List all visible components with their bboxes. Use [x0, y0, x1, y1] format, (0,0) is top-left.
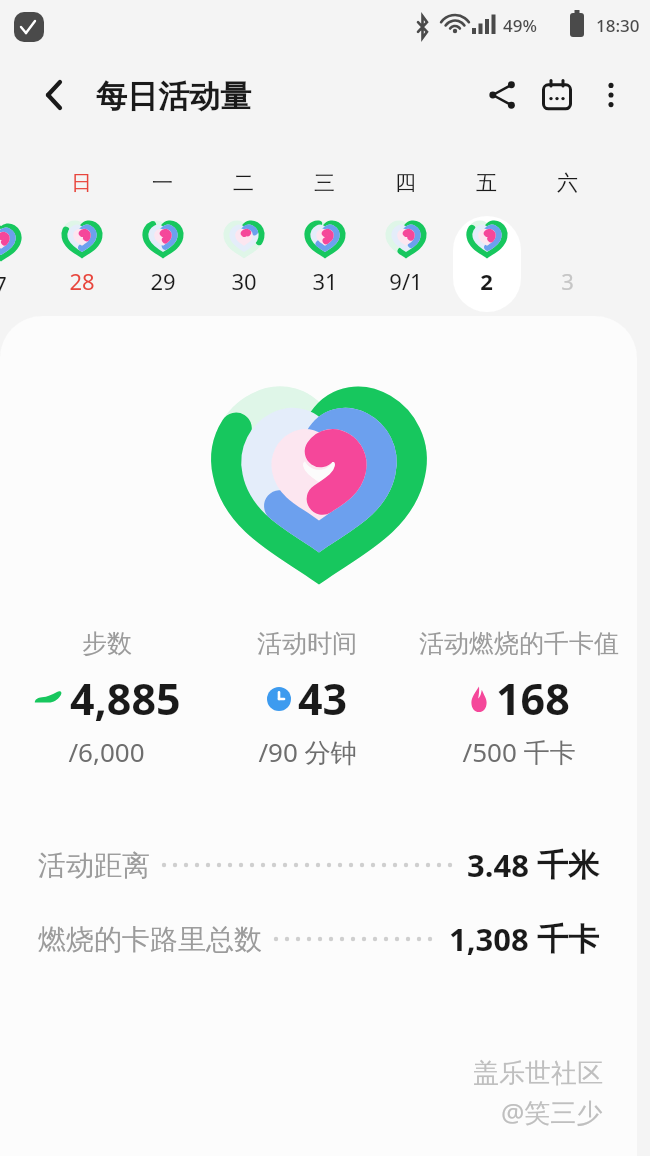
staticText: @笑三少	[501, 1094, 603, 1130]
staticText: 千米	[537, 846, 599, 885]
staticText: 4,885	[70, 669, 181, 728]
button[interactable]: 活动距离	[0, 828, 637, 902]
button[interactable]: 燃烧的卡路里总数	[0, 902, 637, 976]
staticText: 28	[69, 266, 95, 296]
button[interactable]: Calendar	[530, 68, 584, 122]
staticText: 31	[312, 266, 338, 296]
staticText: 29	[150, 266, 176, 296]
button[interactable]: 四	[365, 158, 446, 316]
button[interactable]: More options	[584, 68, 638, 122]
staticText: 二	[233, 170, 254, 196]
staticText: 六	[557, 170, 578, 196]
button[interactable]: 活动燃烧的千卡值	[407, 628, 631, 770]
staticText: 活动燃烧的千卡值	[419, 628, 619, 659]
staticText: 活动距离	[38, 848, 150, 883]
button[interactable]: Back	[34, 75, 74, 115]
staticText: 168	[496, 669, 570, 728]
button[interactable]: Share	[476, 68, 530, 122]
button[interactable]: 日	[41, 158, 122, 316]
button[interactable]: 活动时间	[207, 628, 407, 770]
staticText: 3	[561, 266, 574, 296]
staticText: /6,000	[68, 734, 145, 769]
staticText: /500 千卡	[462, 734, 576, 770]
staticText: /90 分钟	[258, 734, 357, 770]
button[interactable]: 五	[446, 158, 527, 316]
staticText: 2	[480, 266, 493, 296]
staticText: 3.48	[467, 844, 529, 886]
staticText: 步数	[82, 628, 132, 659]
button[interactable]: 7	[0, 158, 41, 316]
staticText: 五	[476, 170, 497, 196]
staticText: 43	[298, 669, 348, 728]
staticText: 9/1	[389, 266, 423, 296]
button[interactable]: 三	[284, 158, 365, 316]
staticText: 四	[395, 170, 416, 196]
staticText: 燃烧的卡路里总数	[38, 922, 262, 957]
button[interactable]: 二	[203, 158, 284, 316]
button[interactable]: 步数	[6, 628, 207, 769]
button[interactable]: 一	[122, 158, 203, 316]
staticText: 30	[231, 266, 257, 296]
staticText: 每日活动量	[96, 77, 251, 116]
staticText: 7	[0, 269, 7, 299]
staticText: 1,308	[449, 918, 529, 960]
staticText: 三	[314, 170, 335, 196]
staticText: 盖乐世社区	[473, 1057, 603, 1090]
staticText: 18:30	[596, 14, 640, 37]
staticText: 一	[152, 170, 173, 196]
staticText: 日	[71, 170, 92, 196]
button[interactable]: 六	[527, 158, 608, 316]
staticText: 活动时间	[257, 628, 357, 659]
staticText: 49%	[503, 14, 537, 37]
staticText: 千卡	[537, 920, 599, 959]
